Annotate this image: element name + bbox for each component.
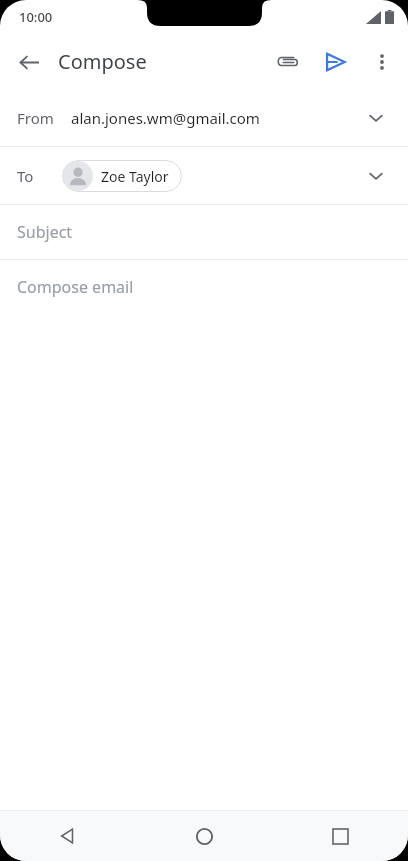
button[interactable]: Back [6, 39, 52, 85]
button[interactable]: Compose email [0, 260, 408, 314]
button[interactable]: From [0, 90, 408, 146]
staticText: From [17, 108, 54, 128]
button[interactable]: Zoe Taylor [62, 160, 182, 192]
staticText: Compose email [17, 276, 134, 298]
button[interactable]: Expand [363, 163, 389, 189]
staticText: Compose [58, 48, 147, 75]
staticText: To [17, 166, 34, 186]
button[interactable]: Attach file [264, 39, 310, 85]
button[interactable]: Expand [363, 105, 389, 131]
button[interactable]: Recent apps [272, 811, 408, 861]
button[interactable]: Send [312, 39, 358, 85]
button[interactable]: Subject [0, 205, 408, 259]
button[interactable]: Home [136, 811, 272, 861]
button[interactable]: Back [0, 811, 136, 861]
staticText: Zoe Taylor [101, 167, 169, 186]
button[interactable]: More options [360, 40, 404, 84]
staticText: 10:00 [19, 8, 53, 26]
button[interactable]: To [0, 147, 408, 204]
staticText: Subject [17, 221, 73, 243]
staticText: alan.jones.wm@gmail.com [71, 108, 260, 128]
